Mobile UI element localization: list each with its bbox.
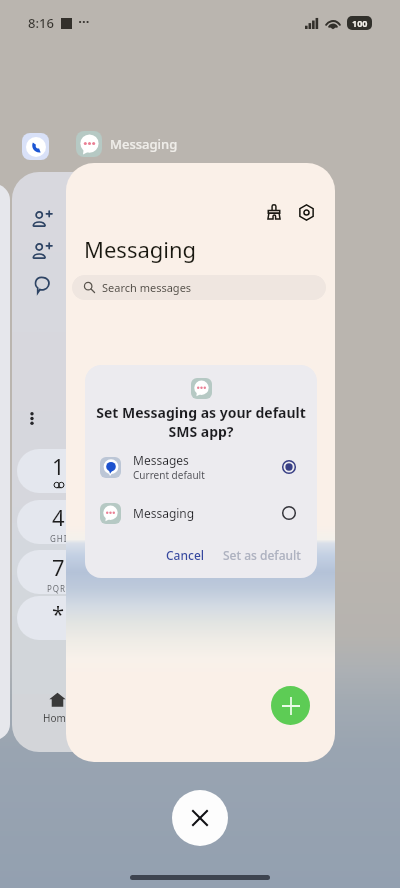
- button[interactable]: Start new chat: [271, 686, 310, 725]
- button[interactable]: Search messages: [72, 275, 326, 300]
- button[interactable]: Phone app: [22, 133, 49, 160]
- button[interactable]: Cancel: [159, 543, 212, 567]
- staticText: Home: [43, 711, 72, 725]
- staticText: Messages: [133, 452, 189, 468]
- button[interactable]: Set as default: [216, 543, 308, 567]
- button[interactable]: 1: [17, 449, 105, 493]
- button[interactable]: 1: [12, 172, 208, 752]
- staticText: GHI: [50, 533, 68, 544]
- staticText: Set as default: [223, 547, 301, 563]
- staticText: Messaging: [110, 135, 178, 153]
- staticText: Cancel: [166, 547, 205, 563]
- button[interactable]: Settings: [293, 199, 319, 225]
- button[interactable]: Messaging: [85, 493, 317, 533]
- staticText: Set Messaging as your default SMS app?: [96, 403, 306, 441]
- staticText: *: [52, 598, 65, 628]
- button[interactable]: *: [17, 596, 105, 640]
- button[interactable]: 7: [17, 550, 105, 594]
- button[interactable]: Clear all recent apps: [172, 790, 228, 846]
- staticText: 8:16: [28, 14, 54, 32]
- staticText: 4: [52, 502, 65, 532]
- staticText: 1: [52, 451, 65, 481]
- button[interactable]: Messages: [85, 447, 317, 487]
- staticText: Messaging: [133, 505, 195, 521]
- staticText: 7: [52, 552, 65, 582]
- staticText: Messaging: [84, 234, 197, 264]
- staticText: 100: [352, 17, 368, 29]
- staticText: PQRS: [47, 583, 70, 594]
- staticText: Search messages: [102, 280, 192, 295]
- button[interactable]: 4: [17, 500, 105, 544]
- button[interactable]: Change theme: [261, 199, 287, 225]
- button[interactable]: Change theme: [66, 163, 335, 762]
- staticText: Current default: [133, 468, 205, 482]
